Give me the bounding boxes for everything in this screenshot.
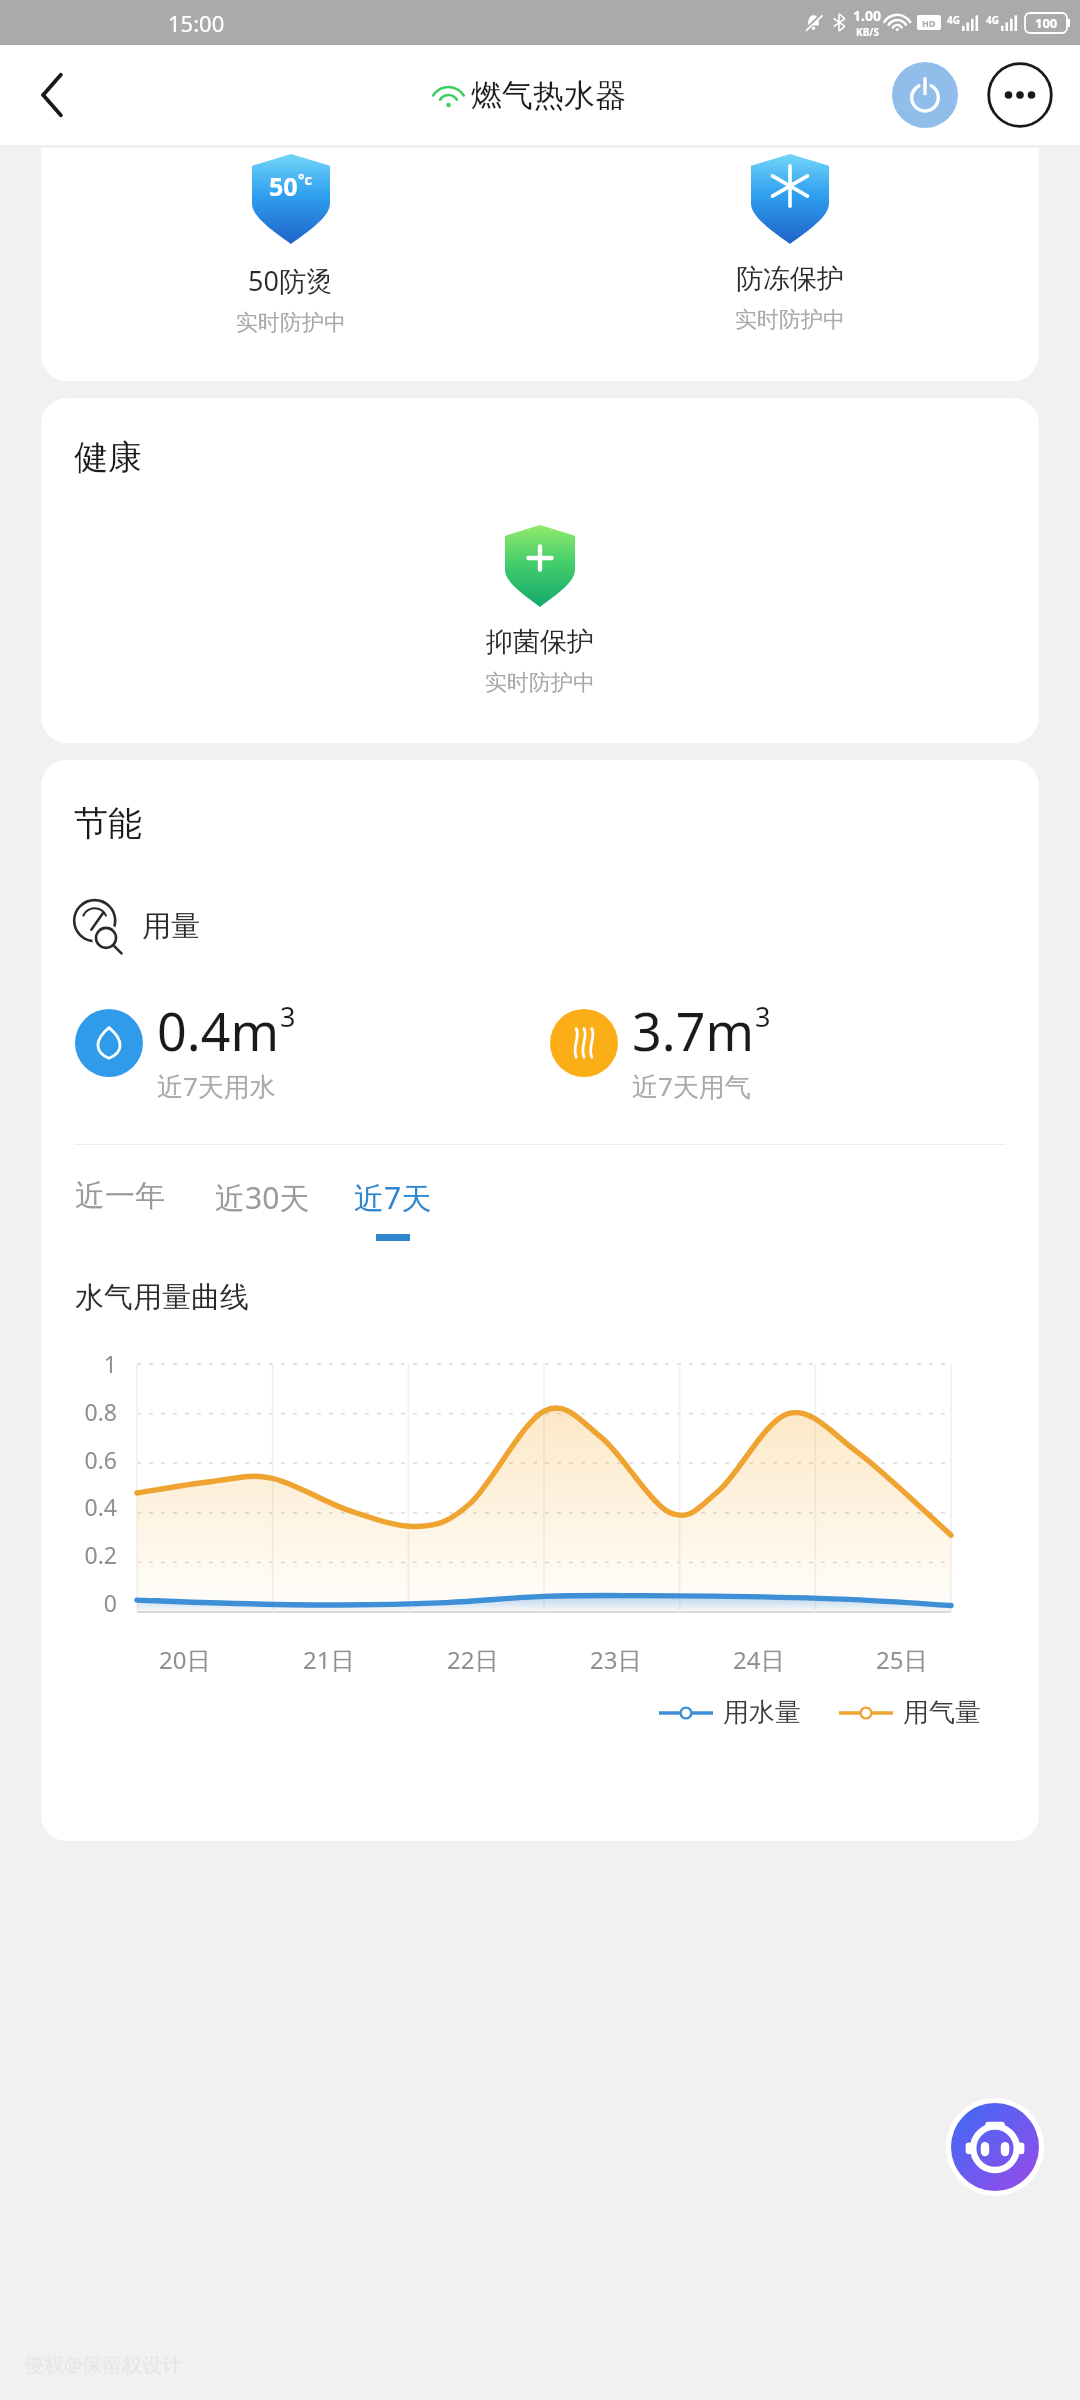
staticText: 健康 [74, 436, 142, 479]
staticText: 21日 [303, 1643, 355, 1676]
staticText: 3.7m [632, 995, 755, 1066]
button[interactable]: 0.4m [75, 995, 550, 1104]
staticText: 0.4m [157, 995, 280, 1066]
staticText: 100 [1035, 14, 1058, 32]
staticText: 用气量 [903, 1696, 981, 1729]
staticText: 抑菌保护 [486, 625, 594, 659]
staticText: 0.2 [65, 1539, 117, 1570]
staticText: 实时防护中 [735, 306, 845, 334]
staticText: 24日 [733, 1643, 785, 1676]
staticText: 23日 [590, 1643, 642, 1676]
staticText: 近一年 [75, 1177, 165, 1215]
staticText: 0 [65, 1587, 117, 1618]
staticText: 0.8 [65, 1396, 117, 1427]
button[interactable]: 近一年 [75, 1177, 165, 1238]
button[interactable]: 用水量 [659, 1696, 801, 1729]
staticText: KB/S [856, 25, 879, 39]
staticText: 近7天 [354, 1177, 432, 1218]
staticText: 0.6 [65, 1444, 117, 1475]
button[interactable]: 50 [41, 154, 540, 337]
staticText: 50 [269, 169, 298, 203]
button[interactable]: Assistant [951, 2103, 1039, 2191]
staticText: 近30天 [215, 1177, 310, 1218]
staticText: 防冻保护 [736, 262, 844, 296]
staticText: 4G [947, 13, 960, 27]
button[interactable]: Back [20, 63, 84, 127]
staticText: 22日 [447, 1643, 499, 1676]
button[interactable]: Power [892, 62, 958, 128]
button[interactable]: 3.7m [550, 995, 1025, 1104]
staticText: 1.00 [853, 6, 881, 25]
staticText: 1 [65, 1348, 117, 1379]
staticText: °c [298, 169, 313, 189]
staticText: 15:00 [168, 8, 225, 38]
staticText: HD [922, 17, 936, 29]
staticText: 3 [280, 998, 296, 1035]
staticText: 侵权@保留权设计 [24, 2351, 182, 2378]
button[interactable]: 近30天 [215, 1177, 310, 1241]
button[interactable]: 用气量 [839, 1696, 981, 1729]
staticText: 用水量 [723, 1696, 801, 1729]
staticText: 近7天用水 [157, 1068, 276, 1104]
staticText: 用量 [142, 908, 200, 945]
staticText: 4G [986, 13, 999, 27]
button[interactable]: 抑菌保护 [41, 525, 1039, 697]
staticText: 实时防护中 [236, 309, 346, 337]
staticText: 0.4 [65, 1491, 117, 1522]
staticText: 近7天用气 [632, 1068, 751, 1104]
button[interactable]: 近7天 [354, 1177, 432, 1241]
staticText: 3 [755, 998, 771, 1035]
button[interactable]: 防冻保护 [540, 154, 1039, 334]
staticText: 燃气热水器 [471, 76, 626, 115]
staticText: 50防烫 [248, 262, 333, 299]
button[interactable]: More options [984, 59, 1056, 131]
staticText: 20日 [159, 1643, 211, 1676]
staticText: 节能 [74, 802, 142, 845]
staticText: 实时防护中 [485, 669, 595, 697]
staticText: 25日 [876, 1643, 928, 1676]
staticText: 水气用量曲线 [75, 1279, 249, 1316]
